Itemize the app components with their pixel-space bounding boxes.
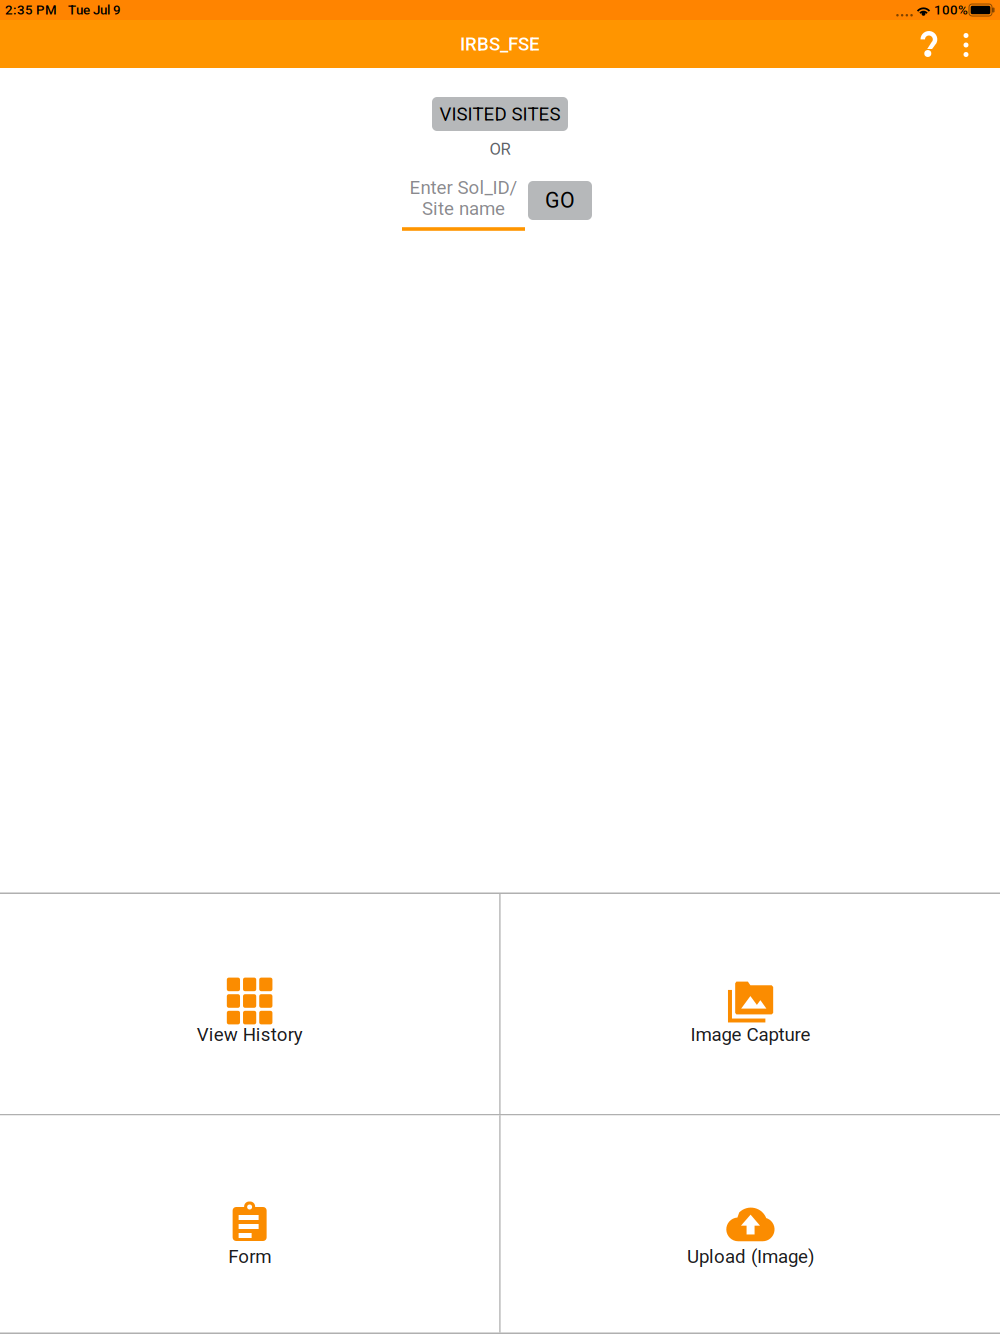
staticText: Upload (Image) <box>687 1246 814 1267</box>
button[interactable]: Form <box>0 1115 499 1332</box>
staticText: 100% <box>934 2 968 18</box>
staticText: View History <box>197 1024 303 1045</box>
button[interactable]: Image Capture <box>501 894 1000 1114</box>
staticText: IRBS_FSE <box>460 33 540 55</box>
staticText: GO <box>545 188 575 213</box>
button[interactable]: VISITED SITES <box>432 97 568 131</box>
button[interactable]: GO <box>528 176 592 215</box>
staticText: VISITED SITES <box>439 103 560 125</box>
button[interactable]: View History <box>0 894 499 1114</box>
staticText: 2:35 PM <box>5 2 57 18</box>
button[interactable]: More options <box>953 20 979 68</box>
button[interactable]: Upload (Image) <box>501 1115 1000 1332</box>
staticText: Site name <box>422 198 505 220</box>
staticText: OR <box>489 139 510 159</box>
staticText: Enter Sol_ID/ <box>409 177 517 199</box>
staticText: Tue Jul 9 <box>68 2 121 18</box>
button[interactable]: Help <box>912 20 946 68</box>
staticText: Image Capture <box>690 1024 810 1045</box>
staticText: Form <box>228 1246 271 1267</box>
